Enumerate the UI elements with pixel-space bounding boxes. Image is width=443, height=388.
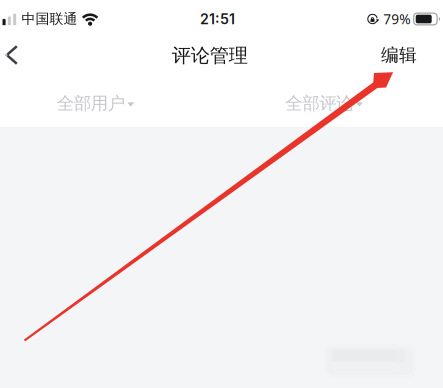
button[interactable]: 编辑 [366,30,438,80]
button[interactable]: 返回 [0,30,37,80]
staticText: 21:51 [200,10,235,27]
staticText: 全部用户 [57,92,125,114]
staticText: 评论管理 [172,43,248,68]
staticText: 全部评论 [285,92,353,114]
staticText: 79% [383,10,410,28]
button[interactable]: 全部用户 [57,80,134,127]
staticText: 编辑 [381,44,417,66]
button[interactable]: 全部评论 [285,80,363,127]
staticText: 中国联通 [22,10,78,28]
